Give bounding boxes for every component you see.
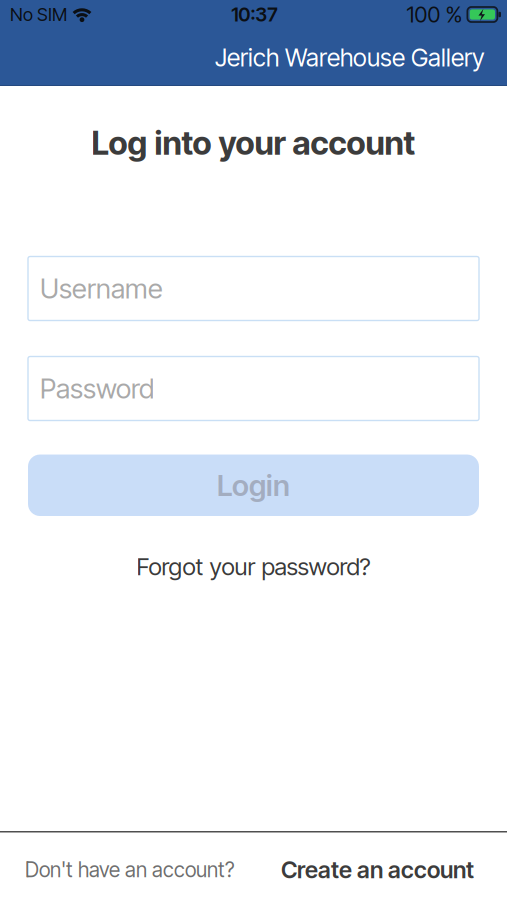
staticText: Jerich Warehouse Gallery bbox=[215, 43, 485, 72]
staticText: Forgot your password? bbox=[136, 552, 370, 581]
staticText: 10:37 bbox=[231, 3, 277, 26]
staticText: Don't have an account? bbox=[25, 857, 235, 882]
button[interactable]: Forgot your password? bbox=[136, 552, 370, 581]
button[interactable]: Create an account bbox=[281, 856, 474, 884]
staticText: 100 % bbox=[406, 1, 462, 28]
staticText: Password bbox=[40, 372, 154, 405]
staticText: Log into your account bbox=[91, 123, 415, 162]
staticText: Create an account bbox=[281, 856, 474, 884]
button[interactable]: Username bbox=[28, 256, 479, 320]
staticText: Login bbox=[217, 467, 290, 503]
staticText: Username bbox=[40, 272, 163, 305]
button[interactable]: Login bbox=[28, 454, 479, 516]
staticText: No SIM bbox=[10, 4, 67, 25]
button[interactable]: Password bbox=[28, 356, 479, 420]
